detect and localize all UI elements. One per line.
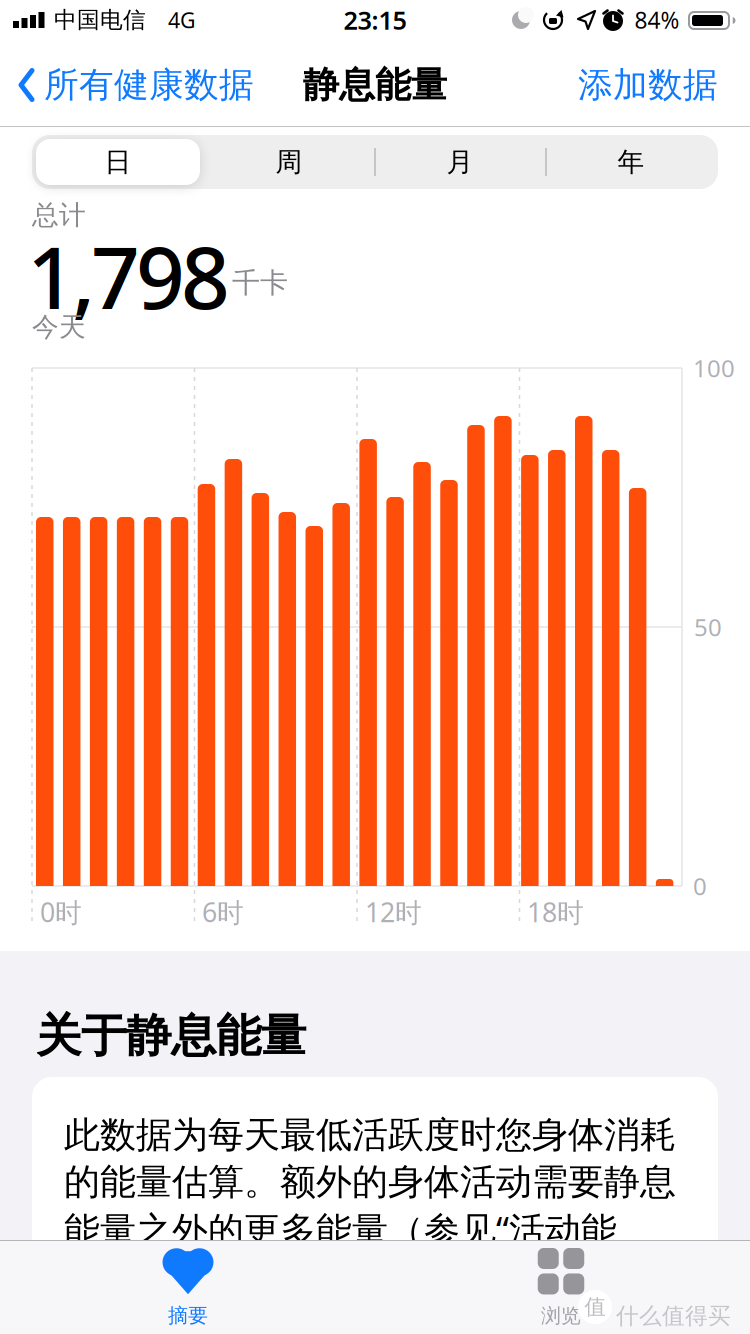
button[interactable]: 浏览 [466, 1244, 656, 1332]
staticText: 23:15 [343, 3, 406, 37]
staticText: 1,798 [27, 219, 230, 333]
staticText: 总计 [32, 199, 86, 231]
staticText: 浏览 [541, 1303, 581, 1328]
staticText: 6时 [202, 894, 244, 930]
button[interactable]: 所有健康数据 [18, 60, 254, 110]
staticText: 值 [584, 1294, 605, 1320]
staticText: 中国电信 [54, 6, 146, 34]
button[interactable]: 周 [204, 135, 374, 189]
button[interactable]: 月 [375, 135, 545, 189]
staticText: 0 [693, 870, 707, 902]
staticText: 能量之外的更多能量（参见“活动能 [64, 1205, 617, 1253]
staticText: 此数据为每天最低活跃度时您身体消耗 [64, 1113, 676, 1157]
staticText: 添加数据 [578, 64, 718, 106]
staticText: 的能量估算。额外的身体活动需要静息 [64, 1160, 676, 1204]
staticText: 什么值得买 [616, 1302, 731, 1330]
staticText: 摘要 [168, 1303, 208, 1328]
staticText: 12时 [365, 894, 422, 930]
button[interactable]: 年 [546, 135, 716, 189]
staticText: 所有健康数据 [44, 64, 254, 106]
staticText: 年 [617, 146, 644, 178]
staticText: 50 [694, 611, 722, 643]
staticText: 日 [104, 146, 131, 178]
staticText: 4G [168, 6, 196, 34]
staticText: 关于静息能量 [36, 1008, 306, 1064]
staticText: 千卡 [232, 266, 288, 300]
staticText: 84% [634, 5, 679, 35]
staticText: 18时 [527, 894, 584, 930]
staticText: 0时 [40, 894, 82, 930]
staticText: 今天 [32, 311, 86, 343]
staticText: 静息能量 [303, 63, 447, 107]
staticText: 100 [693, 352, 735, 384]
staticText: 周 [275, 146, 302, 178]
button[interactable]: 日 [36, 139, 200, 185]
button[interactable]: 添加数据 [578, 60, 718, 110]
button[interactable]: 摘要 [93, 1244, 283, 1332]
staticText: 月 [446, 146, 473, 178]
